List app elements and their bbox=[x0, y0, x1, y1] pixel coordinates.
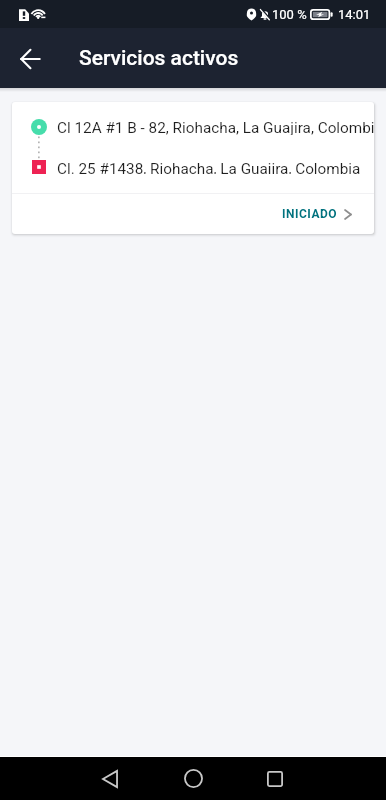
staticText: INICIADO bbox=[282, 207, 338, 221]
button[interactable]: Cl 12A #1 B - 82, Riohacha, La Guajira, … bbox=[12, 102, 374, 234]
button[interactable]: Back bbox=[86, 757, 134, 800]
button[interactable]: Recent apps bbox=[251, 757, 299, 800]
staticText: Cl. 25 #1438, Riohacha, La Guajira, Colo… bbox=[57, 160, 361, 174]
button[interactable]: INICIADO bbox=[272, 201, 374, 227]
button[interactable]: Back bbox=[6, 34, 54, 82]
button[interactable]: Home bbox=[169, 757, 217, 800]
staticText: 100 % bbox=[272, 7, 307, 22]
staticText: 14:01 bbox=[338, 7, 371, 22]
staticText: Cl 12A #1 B - 82, Riohacha, La Guajira, … bbox=[57, 119, 374, 135]
staticText: Servicios activos bbox=[79, 46, 239, 71]
